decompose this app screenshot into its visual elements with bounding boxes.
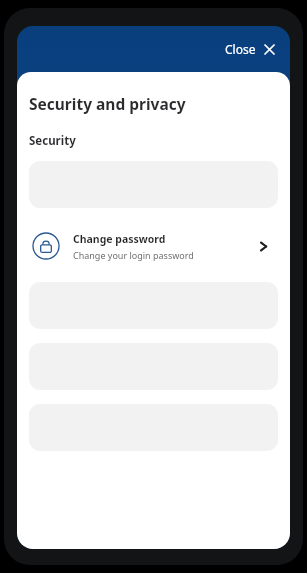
other: Open change password: [252, 235, 274, 257]
staticText: Change password: [73, 232, 166, 246]
staticText: Change your login password: [73, 249, 194, 261]
button[interactable]: Close: [219, 37, 282, 61]
staticText: Security and privacy: [29, 93, 186, 114]
button[interactable]: Change password: [29, 224, 278, 268]
staticText: Close: [225, 41, 256, 57]
staticText: Security: [29, 133, 76, 149]
